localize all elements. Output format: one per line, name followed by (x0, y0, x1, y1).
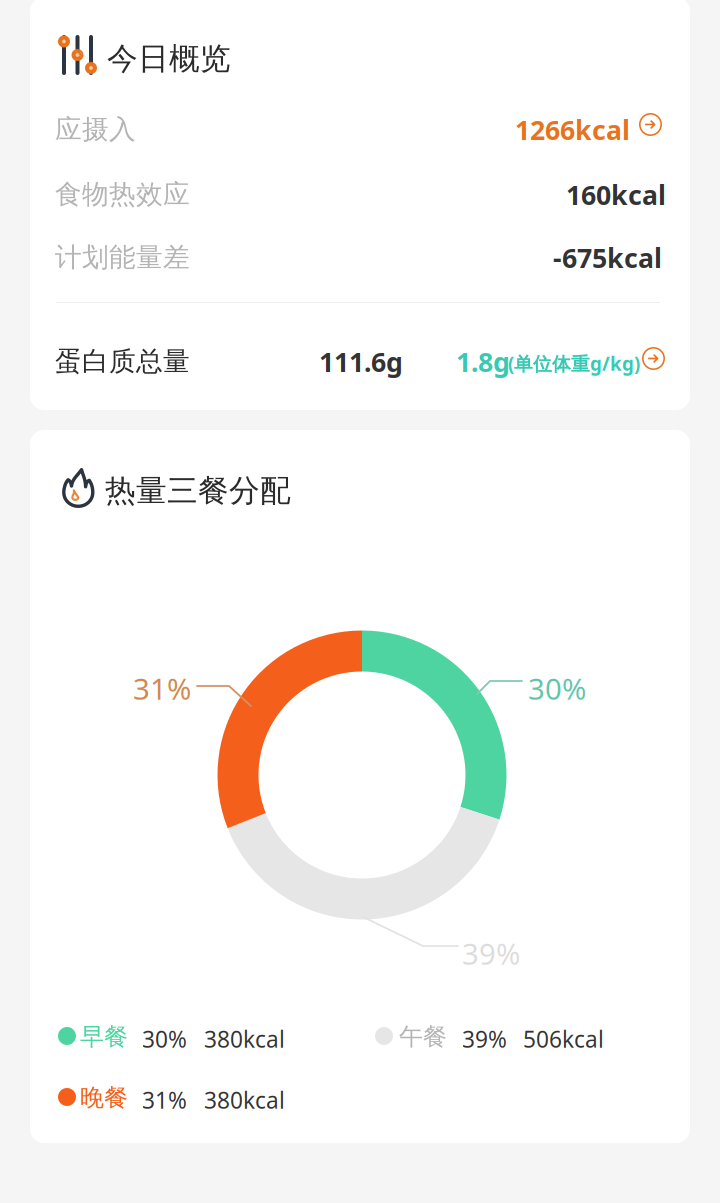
staticText: 应摄入 (55, 113, 136, 146)
staticText: 30% (528, 669, 586, 708)
staticText: 160kcal (566, 177, 666, 212)
staticText: -675kcal (553, 240, 662, 275)
staticText: 计划能量差 (55, 241, 190, 274)
staticText: 1.8g (456, 344, 510, 379)
staticText: 早餐 (80, 1022, 128, 1051)
staticText: 506kcal (523, 1024, 604, 1054)
staticText: 1266kcal (515, 112, 630, 147)
staticText: 午餐 (399, 1022, 447, 1051)
staticText: (单位体重g/kg) (508, 351, 640, 376)
staticText: 380kcal (204, 1024, 285, 1054)
staticText: 39% (462, 1024, 507, 1054)
staticText: 31% (142, 1085, 187, 1115)
staticText: 食物热效应 (55, 178, 190, 211)
staticText: 31% (133, 669, 191, 708)
staticText: 30% (142, 1024, 187, 1054)
button[interactable]: 蛋白质总量 (30, 335, 690, 381)
staticText: 热量三餐分配 (105, 472, 291, 510)
staticText: 今日概览 (107, 40, 231, 78)
staticText: 111.6g (319, 344, 403, 379)
button[interactable]: 应摄入 (30, 102, 690, 152)
staticText: 380kcal (204, 1085, 285, 1115)
staticText: 39% (462, 934, 520, 973)
staticText: 蛋白质总量 (55, 345, 190, 378)
staticText: 晚餐 (80, 1083, 128, 1112)
